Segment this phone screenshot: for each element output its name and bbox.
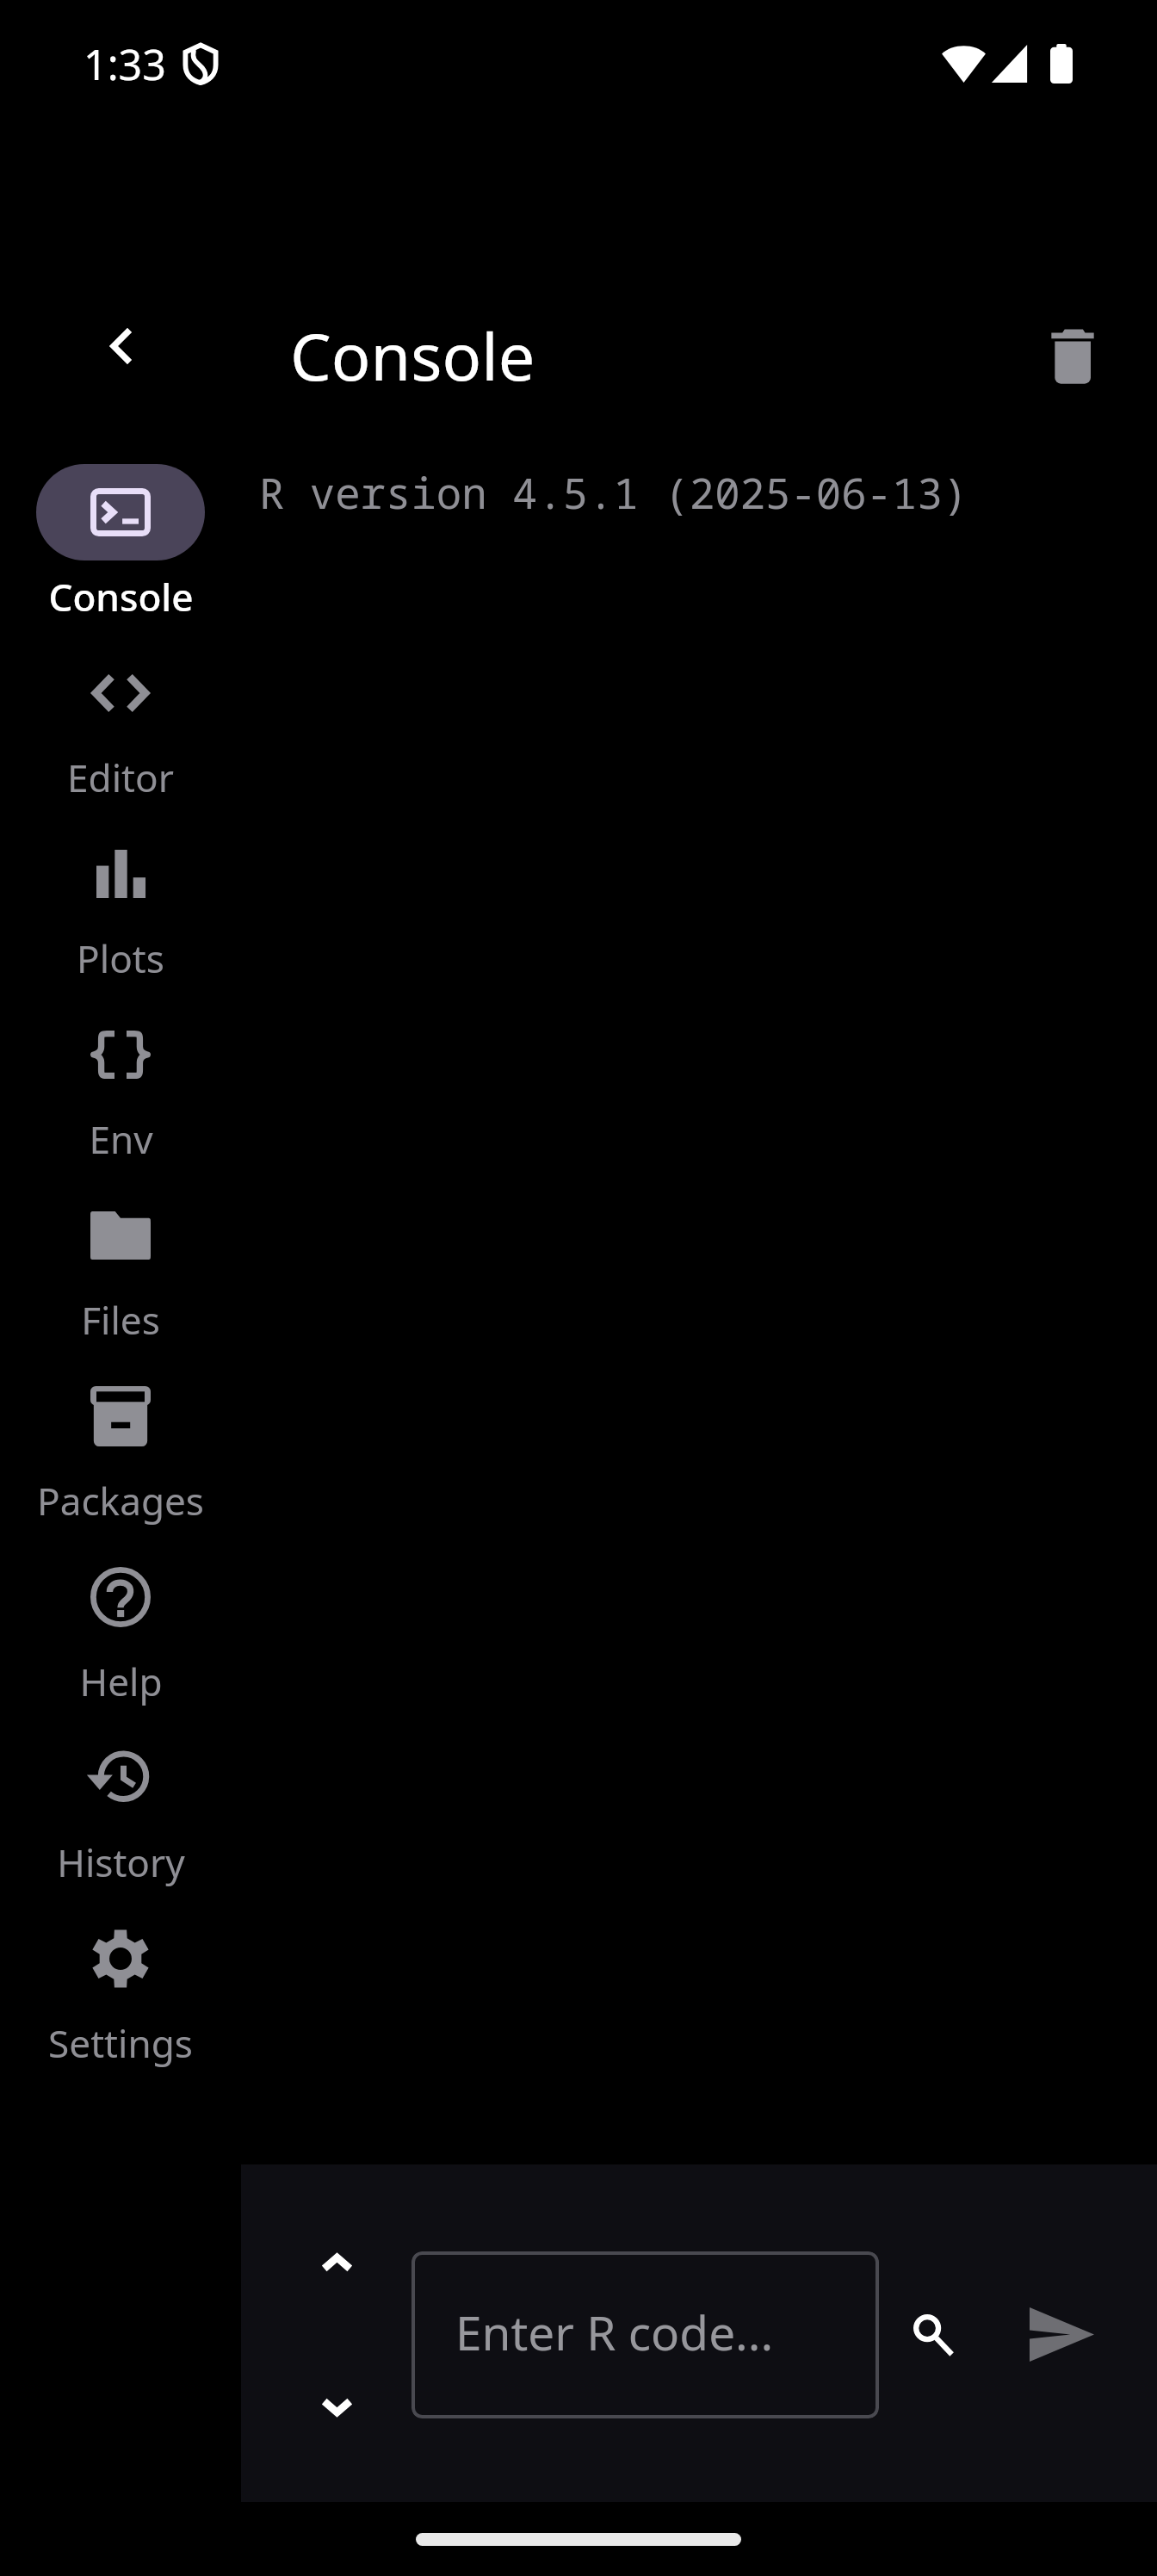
staticText: Help	[79, 1656, 163, 1707]
staticText: Console	[48, 571, 194, 622]
staticText: Editor	[67, 752, 174, 803]
button[interactable]: Enter R code...	[411, 2251, 879, 2418]
button[interactable]: Packages	[0, 1368, 241, 1549]
staticText: Packages	[37, 1475, 204, 1526]
button[interactable]: Run code	[983, 2256, 1140, 2412]
button[interactable]: Settings	[0, 1910, 241, 2091]
staticText: 1:33	[84, 35, 166, 92]
button[interactable]: Previous command	[282, 2214, 391, 2310]
button[interactable]: Editor	[0, 645, 241, 826]
staticText: Console	[290, 311, 535, 399]
staticText: Settings	[48, 2017, 193, 2069]
staticText: Plots	[77, 932, 164, 984]
button[interactable]: Plots	[0, 826, 241, 1006]
staticText: Env	[89, 1113, 153, 1165]
button[interactable]: Back	[48, 274, 193, 418]
button[interactable]: Clear console	[1000, 284, 1145, 429]
staticText: Files	[81, 1294, 160, 1346]
button[interactable]: Search	[861, 2262, 1005, 2406]
button[interactable]: Help	[0, 1549, 241, 1730]
button[interactable]: Console	[0, 464, 241, 645]
staticText: R version 4.5.1 (2025-06-13)	[259, 464, 968, 522]
button[interactable]: Files	[0, 1187, 241, 1368]
staticText: History	[57, 1836, 185, 1888]
button[interactable]: History	[0, 1730, 241, 1910]
staticText: Enter R code...	[455, 2300, 774, 2364]
button[interactable]: Env	[0, 1006, 241, 1187]
button[interactable]: Next command	[282, 2360, 391, 2456]
